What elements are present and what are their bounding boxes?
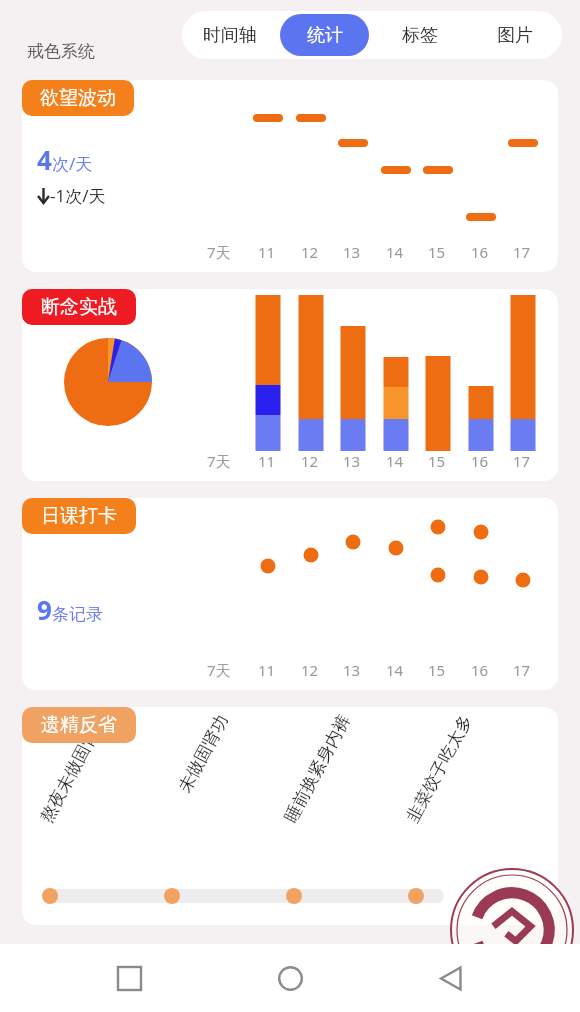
staticText: 15 — [428, 660, 446, 680]
button[interactable]: 时间轴 — [185, 14, 274, 56]
staticText: 16 — [471, 660, 489, 680]
staticText: 7天 — [207, 242, 231, 262]
staticText: 韭菜饺子吃太多 — [402, 711, 477, 826]
staticText: 遗精反省 — [41, 713, 117, 737]
button[interactable]: 日课打卡 — [22, 498, 136, 534]
staticText: 欲望波动 — [40, 86, 116, 110]
staticText: 14 — [386, 660, 404, 680]
button[interactable]: Back — [419, 946, 483, 1010]
staticText: 16 — [471, 242, 489, 262]
staticText: 13 — [343, 242, 361, 262]
staticText: 11 — [258, 451, 276, 471]
staticText: 时间轴 — [203, 24, 257, 47]
staticText: 14 — [386, 451, 404, 471]
staticText: 图片 — [497, 24, 533, 47]
staticText: 日课打卡 — [41, 504, 117, 528]
staticText: 17 — [513, 242, 531, 262]
button[interactable]: Recent apps — [97, 946, 161, 1010]
staticText: 熬夜未做固肾功 — [36, 711, 111, 826]
button[interactable]: Home — [258, 946, 322, 1010]
staticText: 16 — [471, 451, 489, 471]
staticText: 7天 — [207, 660, 231, 680]
button[interactable]: 欲望波动 — [22, 80, 134, 116]
button[interactable]: 7天 — [22, 289, 558, 481]
staticText: 9 — [37, 592, 52, 627]
staticText: 14 — [386, 242, 404, 262]
staticText: 11 — [258, 242, 276, 262]
staticText: 15 — [428, 451, 446, 471]
staticText: 17 — [513, 660, 531, 680]
button[interactable]: 9 — [22, 498, 558, 690]
staticText: 未做固肾功 — [174, 711, 233, 796]
staticText: 条记录 — [52, 604, 103, 625]
staticText: 15 — [428, 242, 446, 262]
button[interactable]: 标签 — [375, 14, 464, 56]
staticText: 标签 — [402, 24, 438, 47]
button[interactable]: 熬夜未做固肾功 — [22, 707, 558, 925]
staticText: 12 — [301, 242, 319, 262]
staticText: 13 — [343, 451, 361, 471]
button[interactable]: 4 — [22, 80, 558, 272]
staticText: 17 — [513, 451, 531, 471]
staticText: 12 — [301, 451, 319, 471]
button[interactable]: 统计 — [280, 14, 369, 56]
button[interactable]: 遗精反省 — [22, 707, 136, 743]
staticText: 12 — [301, 660, 319, 680]
staticText: 睡前换紧身内裤 — [280, 711, 355, 826]
staticText: 次/天 — [52, 152, 93, 175]
staticText: 11 — [258, 660, 276, 680]
staticText: 断念实战 — [41, 295, 117, 319]
staticText: 戒色系统 — [27, 41, 95, 62]
button[interactable]: 断念实战 — [22, 289, 136, 325]
staticText: 13 — [343, 660, 361, 680]
staticText: 4 — [37, 142, 52, 177]
button[interactable]: 图片 — [470, 14, 559, 56]
staticText: -1次/天 — [50, 184, 106, 207]
staticText: 统计 — [307, 24, 343, 47]
staticText: 7天 — [207, 451, 231, 471]
